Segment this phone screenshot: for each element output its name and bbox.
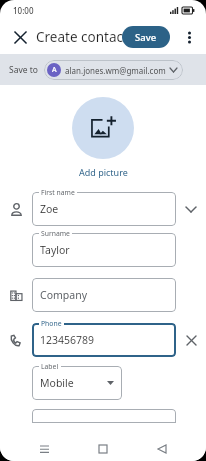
button[interactable]: Add picture — [79, 166, 128, 178]
staticText: First name — [41, 188, 75, 197]
button[interactable]: Close — [7, 24, 33, 50]
button[interactable]: Save — [122, 26, 170, 48]
button[interactable]: Back — [147, 437, 177, 461]
staticText: Mobile — [40, 376, 74, 390]
staticText: Taylor — [40, 243, 70, 257]
button[interactable]: Taylor — [32, 233, 176, 267]
staticText: alan.jones.wm@gmail.com — [65, 65, 166, 76]
staticText: Company — [40, 288, 87, 302]
button[interactable]: Home — [88, 437, 118, 461]
staticText: Surname — [41, 229, 70, 238]
staticText: Zoe — [40, 202, 59, 216]
button[interactable] — [32, 409, 176, 423]
button[interactable]: Company — [32, 278, 176, 312]
button[interactable]: Recent apps — [29, 437, 59, 461]
staticText: A — [52, 65, 57, 75]
button[interactable]: More options — [176, 24, 202, 50]
button[interactable]: 123456789 — [32, 323, 176, 357]
staticText: Save — [135, 31, 157, 44]
button[interactable]: Clear phone — [176, 323, 206, 357]
staticText: Create contact — [36, 28, 128, 46]
staticText: Label — [41, 362, 59, 371]
button[interactable]: Add picture — [72, 97, 134, 159]
button[interactable]: Zoe — [32, 192, 176, 226]
staticText: Phone — [41, 319, 62, 328]
button[interactable]: Expand name fields — [176, 192, 206, 226]
staticText: Save to — [9, 64, 38, 76]
staticText: 123456789 — [40, 333, 95, 347]
staticText: Add picture — [79, 166, 128, 178]
staticText: 10:00 — [13, 5, 34, 16]
button[interactable]: Mobile — [32, 366, 122, 400]
button[interactable]: A — [44, 60, 183, 80]
